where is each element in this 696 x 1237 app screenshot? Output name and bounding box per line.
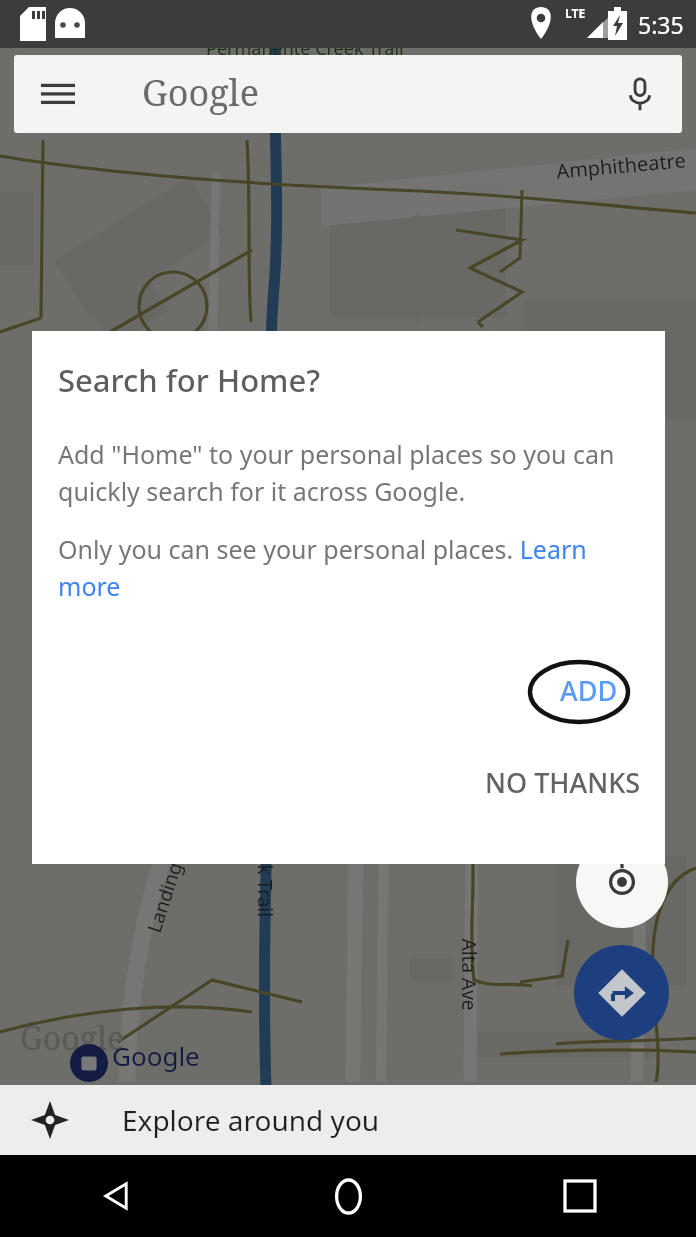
staticText: 5:35 <box>638 9 684 40</box>
staticText: Landing <box>141 858 188 936</box>
button[interactable]: Menu <box>14 55 682 133</box>
button[interactable]: My location <box>576 836 668 928</box>
button[interactable]: Back <box>0 1155 232 1237</box>
staticText: Amphitheatre <box>555 146 687 185</box>
button[interactable]: Only you can see your personal places. L… <box>58 532 635 603</box>
button[interactable]: Menu <box>30 66 86 122</box>
staticText: ADD <box>560 672 618 709</box>
staticText: Google <box>142 68 260 117</box>
button[interactable]: Directions <box>574 945 669 1040</box>
staticText: Search for Home? <box>58 359 321 401</box>
staticText: Google <box>20 1016 125 1060</box>
staticText: Google <box>112 1038 200 1073</box>
button[interactable]: Home <box>232 1155 464 1237</box>
button[interactable]: Recents <box>464 1155 696 1237</box>
staticText: NO THANKS <box>485 764 641 801</box>
staticText: Permanente Creek Trail <box>206 36 404 61</box>
button[interactable]: NO THANKS <box>478 749 648 815</box>
staticText: Explore around you <box>122 1101 380 1139</box>
staticText: Alta Ave <box>455 938 481 1011</box>
button[interactable]: Explore around you <box>0 1085 696 1155</box>
staticText: k Trail <box>251 864 277 917</box>
button[interactable]: ADD <box>528 655 650 725</box>
staticText: Add "Home" to your personal places so yo… <box>58 437 635 508</box>
staticText: LTE <box>565 5 586 21</box>
button[interactable]: Voice search <box>612 66 668 122</box>
